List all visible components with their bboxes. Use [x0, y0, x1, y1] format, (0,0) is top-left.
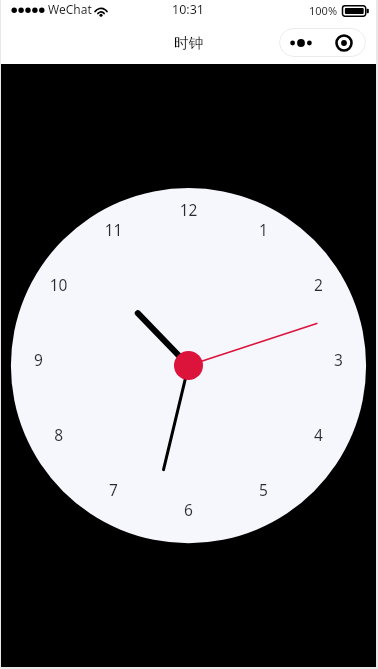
button[interactable]: More — [279, 28, 323, 57]
staticText: 100% — [309, 3, 338, 18]
staticText: 时钟 — [174, 34, 203, 52]
staticText: WeChat — [48, 1, 92, 17]
button[interactable]: Close — [323, 28, 366, 57]
staticText: 10:31 — [172, 1, 204, 18]
button[interactable]: More — [279, 28, 366, 57]
